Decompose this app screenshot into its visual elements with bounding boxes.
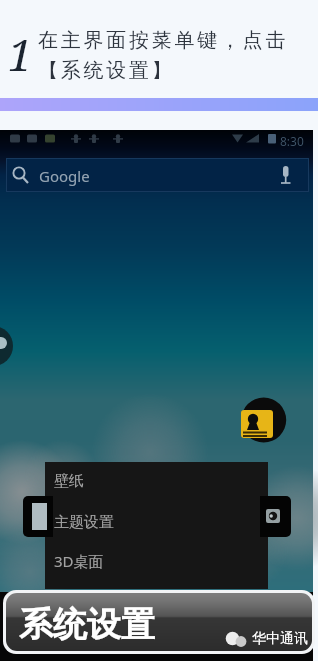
staticText: 壁纸 xyxy=(54,472,84,491)
button[interactable]: 壁纸 xyxy=(45,461,268,501)
button[interactable]: Previous theme xyxy=(23,496,53,537)
button[interactable]: 主题设置 xyxy=(45,502,268,542)
staticText: 8:30 xyxy=(280,133,304,149)
staticText: 3D桌面 xyxy=(54,551,104,571)
staticText: 华中通讯 xyxy=(252,630,308,648)
staticText: Google xyxy=(39,166,90,186)
button[interactable]: Google search xyxy=(6,158,309,192)
button[interactable]: 系统设置 xyxy=(6,593,312,651)
button[interactable]: 3D桌面 xyxy=(45,541,268,581)
staticText: 1 xyxy=(8,24,33,84)
staticText: 在主界面按菜单键，点击 【系统设置】 xyxy=(38,28,289,83)
staticText: 主题设置 xyxy=(54,513,114,532)
staticText: 系统设置 xyxy=(19,603,155,646)
button[interactable]: Next theme xyxy=(260,496,291,537)
